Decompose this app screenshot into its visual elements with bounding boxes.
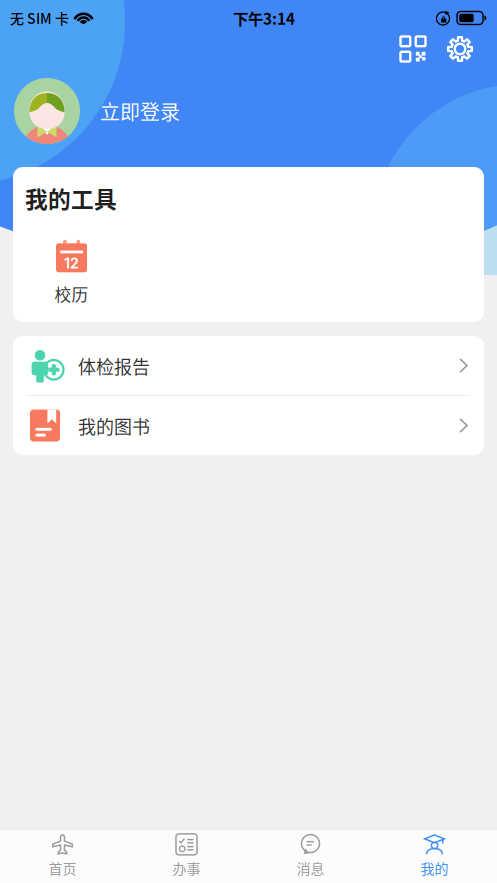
- staticText: 办事: [172, 858, 200, 878]
- button[interactable]: 办事: [124, 830, 248, 882]
- button[interactable]: 我的: [372, 830, 496, 882]
- button[interactable]: 消息: [248, 830, 372, 882]
- button[interactable]: Scan QR code: [391, 27, 435, 71]
- staticText: 消息: [296, 858, 324, 878]
- button[interactable]: 我的图书: [13, 396, 484, 455]
- staticText: 体检报告: [78, 353, 150, 379]
- staticText: 12: [64, 255, 79, 272]
- button[interactable]: 体检报告: [13, 336, 484, 395]
- button[interactable]: 12: [25, 239, 118, 307]
- staticText: 我的工具: [25, 182, 117, 214]
- staticText: 我的图书: [78, 413, 150, 439]
- staticText: 首页: [48, 858, 76, 878]
- button[interactable]: 立即登录: [14, 78, 314, 144]
- staticText: 我的: [420, 858, 448, 878]
- staticText: 下午3:14: [233, 7, 295, 29]
- staticText: 立即登录: [100, 96, 180, 125]
- button[interactable]: Settings: [438, 27, 482, 71]
- button[interactable]: 首页: [0, 830, 124, 882]
- staticText: 校历: [54, 282, 88, 306]
- staticText: 无 SIM 卡: [10, 8, 69, 28]
